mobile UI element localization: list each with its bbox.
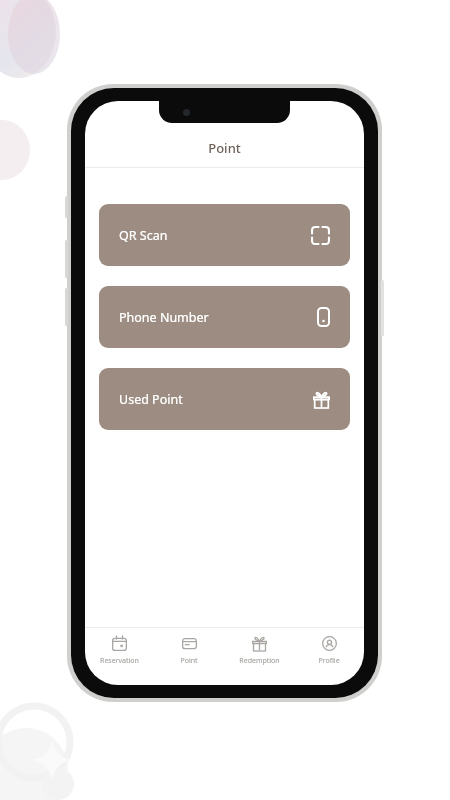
staticText: Reservation <box>100 656 139 666</box>
button[interactable]: Redemption <box>224 633 294 669</box>
other: Reservation <box>112 636 127 651</box>
staticText: QR Scan <box>119 227 168 244</box>
staticText: Profile <box>318 656 340 666</box>
staticText: Point <box>180 656 198 666</box>
staticText: Point <box>208 139 241 157</box>
button[interactable]: Used Point <box>99 368 350 430</box>
staticText: Redemption <box>239 656 280 666</box>
button[interactable]: QR Scan <box>99 204 350 266</box>
staticText: Phone Number <box>119 309 209 326</box>
button[interactable]: Reservation <box>85 633 154 669</box>
staticText: Used Point <box>119 391 183 408</box>
other: Profile <box>322 636 337 651</box>
button[interactable]: Profile <box>294 633 364 669</box>
button[interactable]: Point <box>154 633 224 669</box>
other: Point <box>182 636 197 651</box>
button[interactable]: Phone Number <box>99 286 350 348</box>
